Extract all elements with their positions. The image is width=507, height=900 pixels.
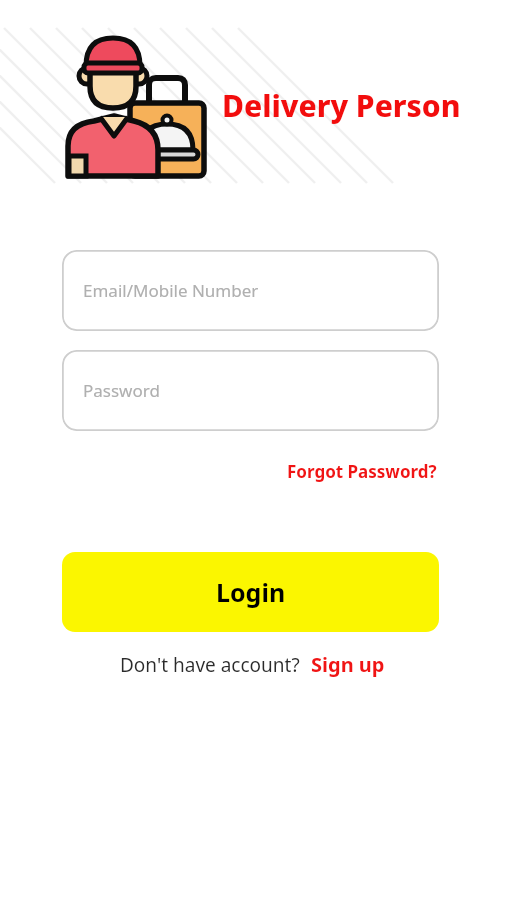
button[interactable]: Password xyxy=(62,350,439,431)
staticText: Sign up xyxy=(311,651,385,678)
staticText: Delivery Person xyxy=(222,85,461,126)
staticText: Don't have account? xyxy=(120,652,300,678)
button[interactable]: Forgot Password? xyxy=(285,457,439,486)
button[interactable]: Email/Mobile Number xyxy=(62,250,439,331)
button[interactable]: Login xyxy=(62,552,439,632)
staticText: Email/Mobile Number xyxy=(83,279,259,302)
staticText: Password xyxy=(83,379,160,402)
button[interactable]: Sign up xyxy=(309,648,387,681)
other: Delivery person illustration xyxy=(60,28,210,183)
staticText: Forgot Password? xyxy=(287,460,437,483)
staticText: Login xyxy=(216,575,286,609)
